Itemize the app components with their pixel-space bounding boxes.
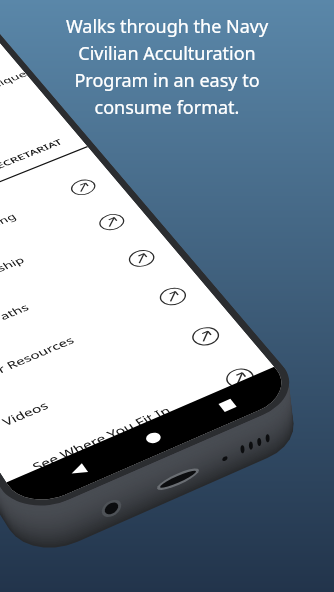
button[interactable]: Navy Leadership (0, 199, 146, 323)
button[interactable]: Recent apps (205, 389, 250, 422)
button[interactable]: See Where You Fit In (1, 351, 278, 494)
staticText: Civilian Onboarding (0, 210, 19, 268)
staticText: Navy Leadership (0, 253, 27, 306)
staticText: Videos (0, 398, 51, 429)
button[interactable]: Civilian Onboarding (0, 165, 116, 285)
staticText: SECRETARIAT (0, 137, 65, 173)
button[interactable]: Videos (0, 311, 243, 448)
staticText: Navy Unique (0, 68, 29, 107)
button[interactable]: Back (55, 453, 100, 488)
button[interactable]: Career Paths (0, 235, 177, 363)
button[interactable]: Home (130, 421, 175, 455)
staticText: Walks through the Navy Civilian Accultur… (51, 14, 283, 119)
staticText: Career Paths (0, 300, 32, 345)
staticText: See Where You Fit In (29, 403, 174, 474)
staticText: Your Resources (0, 333, 78, 386)
button[interactable]: Your Resources (0, 272, 209, 404)
